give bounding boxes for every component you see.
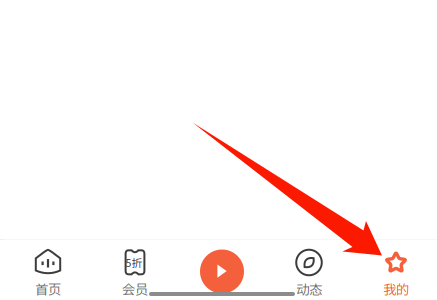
staticText: 动态 [296, 281, 322, 297]
staticText: 5折 [125, 257, 142, 269]
button[interactable]: 我的 [352, 239, 437, 300]
staticText: 会员 [122, 281, 148, 297]
button[interactable]: 动态 [265, 239, 352, 300]
button[interactable]: Play [178, 239, 265, 300]
staticText: 我的 [383, 281, 409, 297]
staticText: 首页 [35, 281, 61, 297]
button[interactable]: 5折 [91, 239, 178, 300]
button[interactable]: 首页 [4, 239, 91, 300]
